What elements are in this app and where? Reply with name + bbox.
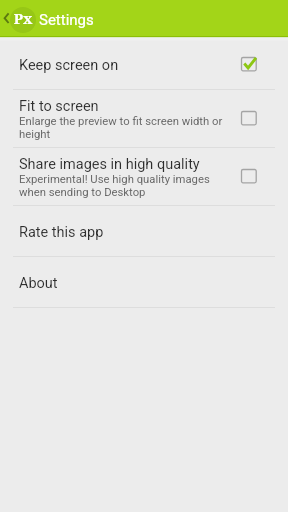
staticText: Enlarge the preview to fit screen width … [19,115,223,140]
button[interactable]: About [0,257,288,307]
staticText: Fit to screen [19,98,99,115]
staticText: Experimental! Use high quality images wh… [19,173,210,198]
button[interactable]: Rate this app [0,206,288,256]
button[interactable]: Share images in high quality [0,148,288,205]
staticText: Share images in high quality [19,156,200,173]
staticText: About [19,275,58,292]
button[interactable]: Keep screen on [0,37,288,89]
staticText: Rate this app [19,224,104,241]
button[interactable]: Navigate up [0,0,38,37]
staticText: Settings [39,11,94,29]
button[interactable]: Fit to screen [0,90,288,147]
staticText: Keep screen on [19,57,119,74]
staticText: Px [10,8,36,28]
